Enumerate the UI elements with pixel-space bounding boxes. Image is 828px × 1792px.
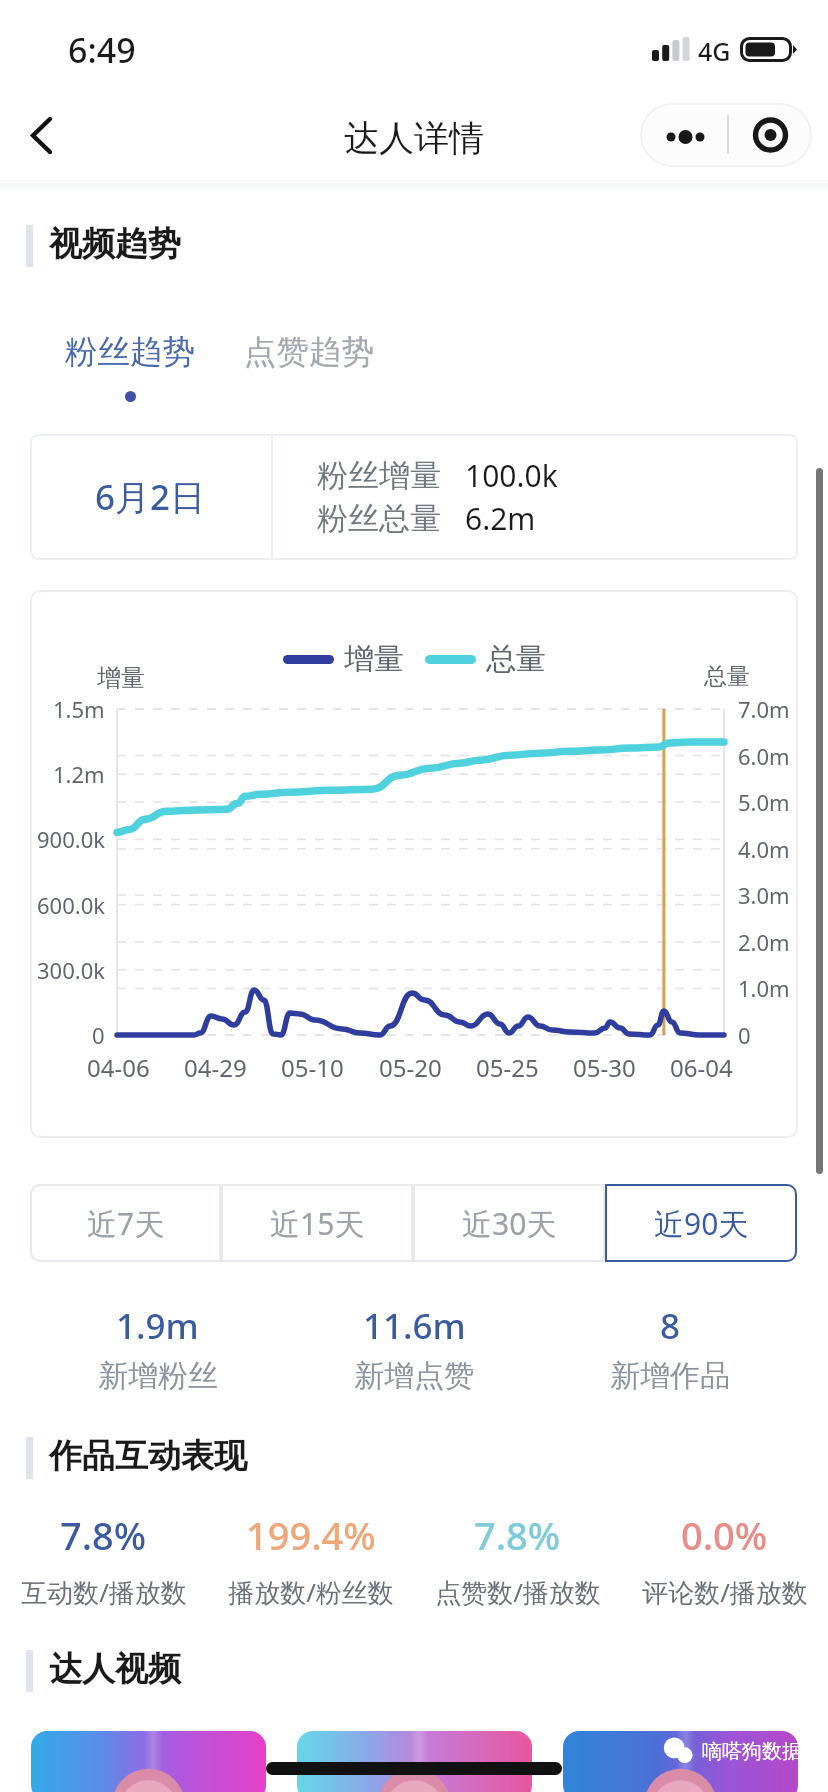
staticText: 4G bbox=[698, 34, 731, 68]
staticText: 新增作品 bbox=[610, 1357, 730, 1395]
button[interactable]: 近30天 bbox=[413, 1184, 605, 1262]
button[interactable] bbox=[31, 1731, 266, 1792]
staticText: 近7天 bbox=[87, 1203, 165, 1244]
staticText: 近15天 bbox=[270, 1203, 365, 1244]
button[interactable]: More options bbox=[645, 103, 727, 167]
staticText: 6:49 bbox=[68, 27, 136, 73]
staticText: 1.5m bbox=[53, 694, 105, 724]
button[interactable]: 粉丝趋势 bbox=[49, 320, 209, 408]
staticText: 总量 bbox=[704, 662, 750, 691]
staticText: 6.0m bbox=[738, 741, 790, 771]
staticText: 点赞趋势 bbox=[244, 332, 374, 373]
button[interactable]: 11.6m bbox=[286, 1302, 542, 1395]
staticText: 增量 bbox=[344, 640, 404, 678]
staticText: 嘀嗒狗数据 bbox=[702, 1739, 802, 1764]
staticText: 达人视频 bbox=[49, 1648, 181, 1690]
staticText: 900.0k bbox=[37, 824, 105, 854]
staticText: 199.4% bbox=[246, 1509, 376, 1561]
staticText: 播放数/粉丝数 bbox=[228, 1574, 394, 1610]
button[interactable] bbox=[297, 1731, 532, 1792]
staticText: 点赞数/播放数 bbox=[435, 1574, 601, 1610]
button[interactable]: 7.8% bbox=[414, 1509, 621, 1610]
staticText: 总量 bbox=[486, 640, 546, 678]
button[interactable]: 近90天 bbox=[605, 1184, 797, 1262]
staticText: 达人详情 bbox=[344, 116, 484, 160]
button[interactable]: 近15天 bbox=[221, 1184, 413, 1262]
staticText: 粉丝增量 bbox=[317, 456, 441, 495]
staticText: 05-25 bbox=[476, 1051, 539, 1084]
staticText: 05-20 bbox=[379, 1051, 442, 1084]
button[interactable]: 8 bbox=[542, 1302, 798, 1395]
staticText: 互动数/播放数 bbox=[21, 1574, 187, 1610]
staticText: 近30天 bbox=[462, 1203, 557, 1244]
staticText: 6月2日 bbox=[95, 473, 206, 521]
button[interactable]: Mini program menu bbox=[731, 103, 811, 167]
staticText: 7.8% bbox=[60, 1509, 147, 1561]
button[interactable]: 7.8% bbox=[0, 1509, 207, 1610]
button[interactable]: Back bbox=[10, 103, 74, 167]
staticText: 新增点赞 bbox=[354, 1357, 474, 1395]
staticText: 4.0m bbox=[738, 834, 790, 864]
staticText: 05-30 bbox=[573, 1051, 636, 1084]
staticText: 7.0m bbox=[738, 694, 790, 724]
staticText: 0.0% bbox=[681, 1509, 768, 1561]
staticText: 05-10 bbox=[281, 1051, 344, 1084]
staticText: 1.9m bbox=[116, 1302, 199, 1350]
staticText: 1.2m bbox=[53, 759, 105, 789]
staticText: 100.0k bbox=[465, 455, 558, 496]
staticText: 粉丝总量 bbox=[317, 499, 441, 538]
button[interactable]: 点赞趋势 bbox=[228, 320, 388, 408]
staticText: 3.0m bbox=[738, 880, 790, 910]
staticText: 0 bbox=[738, 1020, 751, 1050]
staticText: 评论数/播放数 bbox=[642, 1574, 808, 1610]
button[interactable]: 1.9m bbox=[29, 1302, 286, 1395]
button[interactable]: 近7天 bbox=[30, 1184, 221, 1262]
button[interactable]: 0.0% bbox=[621, 1509, 828, 1610]
staticText: 新增粉丝 bbox=[98, 1357, 218, 1395]
staticText: 0 bbox=[92, 1020, 105, 1050]
staticText: 2.0m bbox=[738, 927, 790, 957]
staticText: 作品互动表现 bbox=[49, 1435, 247, 1477]
staticText: 增量 bbox=[97, 663, 145, 693]
staticText: 7.8% bbox=[474, 1509, 561, 1561]
staticText: 300.0k bbox=[37, 955, 105, 985]
button[interactable]: 199.4% bbox=[207, 1509, 414, 1610]
staticText: 近90天 bbox=[654, 1203, 749, 1244]
staticText: 04-06 bbox=[87, 1051, 150, 1084]
staticText: 8 bbox=[660, 1302, 681, 1350]
staticText: 11.6m bbox=[363, 1302, 466, 1350]
staticText: 6.2m bbox=[465, 498, 536, 539]
staticText: 5.0m bbox=[738, 787, 790, 817]
staticText: 06-04 bbox=[670, 1051, 733, 1084]
staticText: 04-29 bbox=[184, 1051, 247, 1084]
staticText: 视频趋势 bbox=[49, 223, 181, 265]
staticText: 粉丝趋势 bbox=[65, 332, 195, 373]
button[interactable] bbox=[563, 1731, 798, 1792]
staticText: 1.0m bbox=[738, 973, 790, 1003]
staticText: 600.0k bbox=[37, 890, 105, 920]
